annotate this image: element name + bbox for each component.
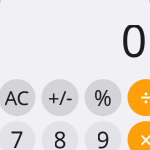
button[interactable]: Multiply [127,121,150,150]
staticText: 7 [10,124,23,150]
button[interactable]: 8 [41,121,78,150]
staticText: 9 [96,124,109,150]
staticText: ÷ [139,82,150,113]
button[interactable]: % [84,79,121,116]
staticText: AC [4,84,29,111]
staticText: +/- [48,84,72,111]
staticText: % [94,83,112,112]
button[interactable]: 9 [84,121,121,150]
button[interactable]: +/- [41,79,78,116]
staticText: × [139,124,150,150]
button[interactable]: 7 [0,121,35,150]
button[interactable]: Divide [127,79,150,116]
button[interactable]: AC [0,79,35,116]
staticText: 8 [53,124,66,150]
staticText: 0 [121,10,147,70]
